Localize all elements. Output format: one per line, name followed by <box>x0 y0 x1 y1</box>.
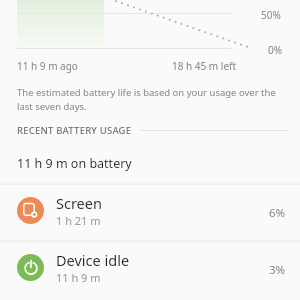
staticText: 18 h 45 m left <box>172 59 237 73</box>
staticText: 6% <box>269 205 286 221</box>
staticText: 11 h 9 m ago <box>17 59 78 73</box>
staticText: 0% <box>268 43 283 57</box>
staticText: The estimated battery life is based on y… <box>17 86 276 113</box>
staticText: Screen <box>56 193 102 213</box>
staticText: RECENT BATTERY USAGE <box>17 124 132 137</box>
other: Screen battery usage <box>22 202 40 220</box>
staticText: 3% <box>269 262 286 278</box>
staticText: 11 h 9 m on battery <box>17 155 132 172</box>
other: Device idle battery usage <box>22 259 40 277</box>
staticText: Device idle <box>56 250 130 270</box>
button[interactable]: Device idle battery usage <box>0 239 300 295</box>
button[interactable]: Screen battery usage <box>0 182 300 238</box>
staticText: 50% <box>261 8 281 22</box>
staticText: 11 h 9 m <box>56 270 101 285</box>
staticText: 1 h 21 m <box>56 213 101 228</box>
